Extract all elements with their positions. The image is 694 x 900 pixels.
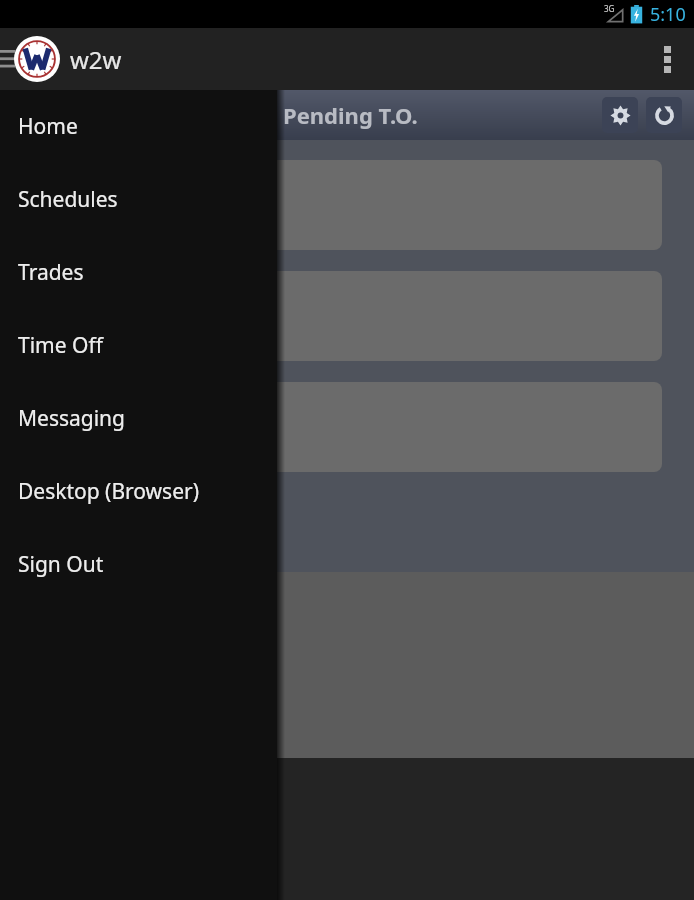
button[interactable]: Schedules [0,163,277,236]
staticText: w2w [70,43,122,76]
staticText: Sign Out [18,550,104,579]
button[interactable] [12,271,662,361]
button[interactable]: Settings [602,97,638,133]
button[interactable]: Messaging [0,382,277,455]
staticText: 5:10 [650,2,686,27]
button[interactable]: Home [0,90,277,163]
staticText: Desktop (Browser) [18,477,199,506]
button[interactable]: Trades [0,236,277,309]
staticText: 3G [604,3,615,14]
staticText: Schedules [18,185,118,214]
staticText: Home [18,112,78,141]
button[interactable]: Desktop (Browser) [0,455,277,528]
button[interactable]: Time Off [0,309,277,382]
button[interactable]: Refresh [646,97,682,133]
button[interactable] [12,382,662,472]
staticText: Trades [18,258,84,287]
staticText: Pending T.O. [283,100,418,130]
button[interactable]: Sign Out [0,528,277,601]
button[interactable] [12,160,662,250]
staticText: Time Off [18,331,103,360]
button[interactable]: Open navigation drawer [0,28,17,90]
button[interactable]: More options [640,28,694,90]
staticText: Messaging [18,404,126,433]
